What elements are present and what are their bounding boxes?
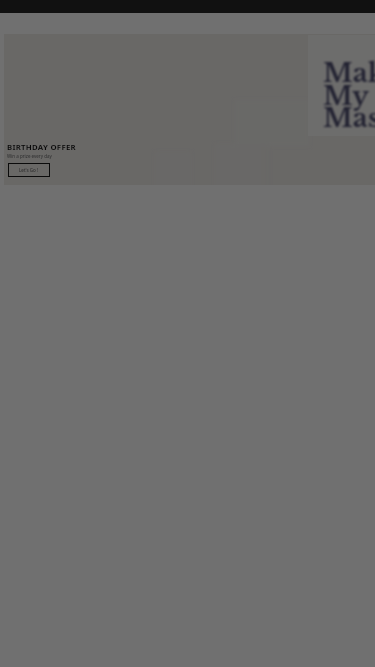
staticText: Let's Go ! bbox=[19, 167, 39, 173]
staticText: Win a prize every day bbox=[7, 153, 52, 159]
staticText: My bbox=[323, 80, 369, 112]
staticText: BIRTHDAY OFFER bbox=[7, 142, 76, 153]
button[interactable]: Let's Go ! bbox=[8, 163, 50, 177]
button[interactable]: Close dialog bbox=[0, 0, 375, 667]
staticText: Make bbox=[323, 57, 375, 89]
button[interactable]: Make bbox=[4, 34, 375, 185]
staticText: Mask bbox=[323, 102, 375, 134]
